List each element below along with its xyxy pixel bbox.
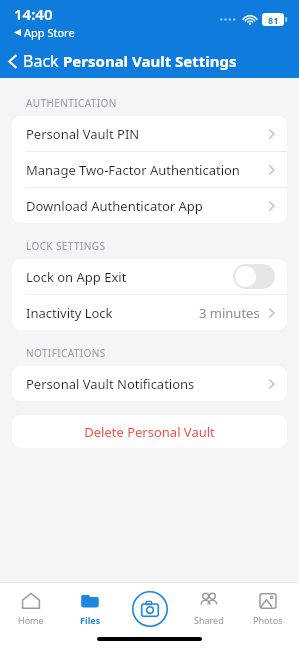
other: Lock on App Exit toggle [233,264,275,289]
staticText: Lock on App Exit [26,268,127,286]
button[interactable]: Home [3,587,59,630]
staticText: Download Authenticator App [26,197,203,215]
button[interactable]: Lock on App Exit [12,259,287,295]
staticText: Personal Vault Notifications [26,375,195,393]
staticText: Back [23,50,59,72]
staticText: NOTIFICATIONS [26,346,106,360]
button[interactable]: Download Authenticator App [12,188,287,223]
button[interactable]: Files [62,587,118,630]
button[interactable]: Delete Personal Vault [12,415,287,448]
staticText: LOCK SETTINGS [26,239,106,253]
staticText: 14:40 [14,4,53,24]
button[interactable]: Photos [240,587,296,630]
button[interactable]: Camera [122,591,178,627]
staticText: Personal Vault Settings [63,51,237,71]
button[interactable]: Personal Vault PIN [12,116,287,152]
staticText: Home [18,614,44,626]
button[interactable]: Shared [181,587,237,630]
staticText: Manage Two-Factor Authentication [26,161,240,179]
staticText: Shared [194,614,224,626]
button[interactable]: Back [0,46,67,76]
button[interactable]: Inactivity Lock [12,295,287,330]
staticText: 3 minutes [199,304,260,322]
button[interactable]: Personal Vault Notifications [12,366,287,401]
staticText: Delete Personal Vault [84,423,215,441]
staticText: 81 [268,14,279,26]
button[interactable]: Manage Two-Factor Authentication [12,152,287,188]
staticText: Inactivity Lock [26,304,113,322]
staticText: Photos [253,614,283,626]
staticText: Files [80,614,101,626]
staticText: Personal Vault PIN [26,125,140,143]
staticText: App Store [24,25,75,40]
staticText: AUTHENTICATION [26,96,117,110]
